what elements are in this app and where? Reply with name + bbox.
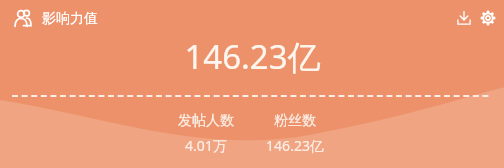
staticText: 146.23亿 <box>184 34 321 79</box>
staticText: 146.23亿 <box>266 136 324 155</box>
button[interactable]: Download <box>454 8 474 28</box>
button[interactable]: 粉丝数 <box>249 112 341 155</box>
button[interactable]: Settings <box>478 8 498 28</box>
staticText: 粉丝数 <box>274 112 316 130</box>
button[interactable]: 发帖人数 <box>163 112 249 155</box>
staticText: 影响力值 <box>42 10 98 28</box>
staticText: 发帖人数 <box>178 112 234 130</box>
staticText: 4.01万 <box>185 136 227 155</box>
button[interactable]: 影响力值 <box>13 8 98 29</box>
